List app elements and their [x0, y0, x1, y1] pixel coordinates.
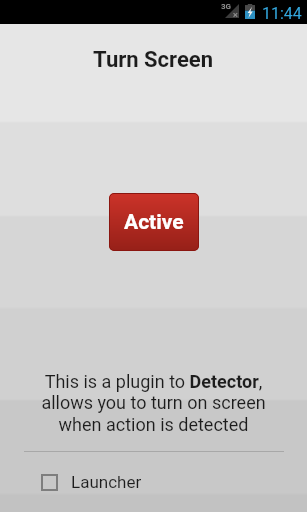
staticText: Launcher [71, 472, 142, 492]
other: Mobile signal [225, 4, 239, 18]
button[interactable]: Launcher [0, 464, 307, 500]
other: Battery charging [245, 4, 255, 19]
staticText: 3G [221, 2, 232, 11]
staticText: Active [124, 210, 184, 235]
staticText: This is a plugin to Detector, allows you… [18, 371, 289, 436]
staticText: 11:44 [262, 4, 302, 23]
button[interactable]: Active [109, 193, 199, 251]
staticText: Turn Screen [93, 47, 214, 73]
